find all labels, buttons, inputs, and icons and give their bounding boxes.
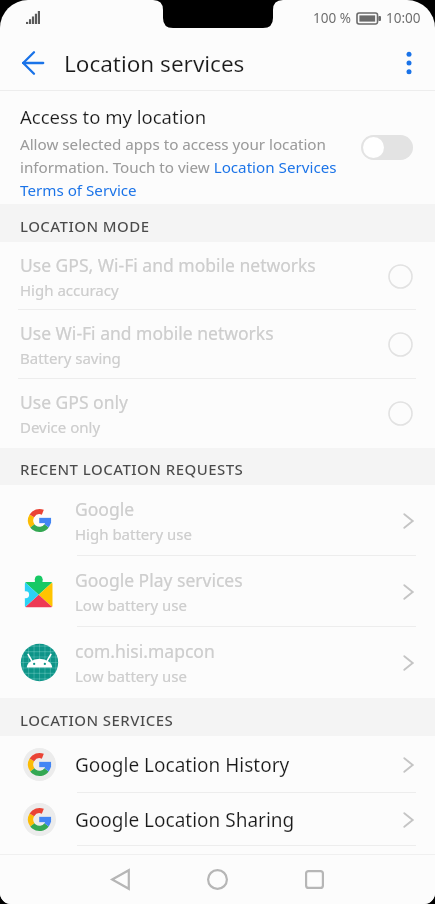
button[interactable]: com.hisi.mapcon — [0, 627, 435, 698]
staticText: Device only — [20, 417, 101, 437]
staticText: RECENT LOCATION REQUESTS — [20, 459, 244, 479]
staticText: Battery saving — [20, 348, 121, 368]
staticText: Google Location Sharing — [75, 807, 295, 833]
staticText: Use Wi-Fi and mobile networks — [20, 321, 274, 345]
button[interactable]: Access to my location toggle — [361, 135, 413, 160]
button[interactable]: Recents — [290, 855, 338, 903]
button[interactable]: Use GPS, Wi-Fi and mobile networks — [0, 242, 435, 310]
staticText: Google — [75, 497, 135, 521]
staticText: Location services — [64, 48, 245, 79]
staticText: Access to my location — [20, 104, 207, 129]
staticText: LOCATION SERVICES — [20, 710, 174, 730]
staticText: High accuracy — [20, 280, 119, 300]
button[interactable]: Google Play services — [0, 556, 435, 627]
button[interactable]: Use Wi-Fi and mobile networks — [0, 310, 435, 379]
button[interactable]: Use GPS only — [0, 379, 435, 448]
button[interactable]: Back — [10, 40, 56, 86]
button[interactable]: More options — [387, 41, 431, 85]
staticText: Use GPS, Wi-Fi and mobile networks — [20, 253, 316, 277]
button[interactable]: Access to my location — [0, 91, 435, 204]
staticText: LOCATION MODE — [20, 216, 150, 236]
staticText: com.hisi.mapcon — [75, 639, 215, 663]
staticText: Use GPS only — [20, 390, 128, 414]
staticText: Low battery use — [75, 666, 187, 686]
staticText: High battery use — [75, 524, 192, 544]
button[interactable]: Google Location History — [0, 736, 435, 793]
button[interactable]: Google Location Sharing — [0, 793, 435, 846]
staticText: Google Location History — [75, 752, 290, 778]
staticText: 10:00 — [386, 9, 421, 27]
staticText: Allow selected apps to access your locat… — [20, 134, 352, 201]
button[interactable]: Back — [96, 855, 144, 903]
staticText: Low battery use — [75, 595, 187, 615]
button[interactable]: Google — [0, 485, 435, 556]
staticText: Google Play services — [75, 568, 243, 592]
button[interactable]: Home — [193, 855, 241, 903]
staticText: 100 % — [313, 9, 351, 27]
